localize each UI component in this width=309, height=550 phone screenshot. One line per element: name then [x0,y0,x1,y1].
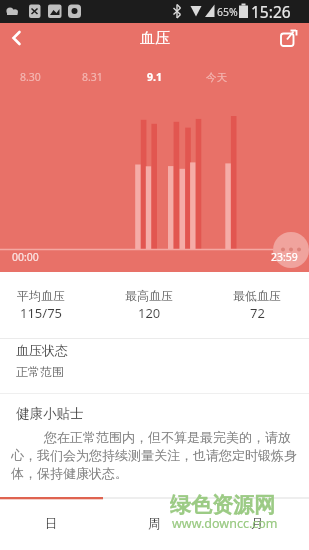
staticText: 8.30 [20,70,41,84]
staticText: 115/75 [20,304,63,322]
staticText: 00:00 [12,250,39,264]
staticText: 健康小贴士 [16,405,84,422]
staticText: 体，保持健康状态。 [11,465,128,481]
staticText: 血压状态 [16,342,68,358]
staticText: www.downcc.com [172,515,278,532]
staticText: 月 [251,516,264,532]
staticText: 15:26 [251,1,291,22]
button[interactable] [273,232,309,268]
staticText: 心，我们会为您持续测量关注，也请您定时锻炼身 [11,447,297,463]
staticText: 120 [138,304,161,322]
button[interactable] [269,23,309,53]
staticText: 8.31 [82,70,103,84]
button[interactable]: 周 [103,497,206,550]
button[interactable]: 9.1 [123,62,185,92]
staticText: 您在正常范围内，但不算是最完美的，请放 [44,429,291,445]
staticText: 绿色资源网 [170,492,275,518]
staticText: 血压 [140,29,170,48]
staticText: 周 [148,516,161,532]
button[interactable]: 8.31 [61,62,123,92]
staticText: 今天 [206,71,227,84]
button[interactable]: 8.30 [0,62,61,92]
staticText: 23:59 [271,250,298,264]
staticText: 72 [250,304,265,322]
staticText: 65% [217,5,238,19]
staticText: 平均血压 [17,288,65,303]
staticText: 最高血压 [125,288,173,303]
staticText: 9.1 [147,70,162,84]
button[interactable]: 月 [206,497,309,550]
button[interactable]: 日 [0,497,103,550]
staticText: 日 [45,516,58,532]
button[interactable] [2,23,32,53]
staticText: 正常范围 [16,364,64,379]
staticText: 最低血压 [233,288,281,303]
button[interactable]: 今天 [185,62,247,92]
